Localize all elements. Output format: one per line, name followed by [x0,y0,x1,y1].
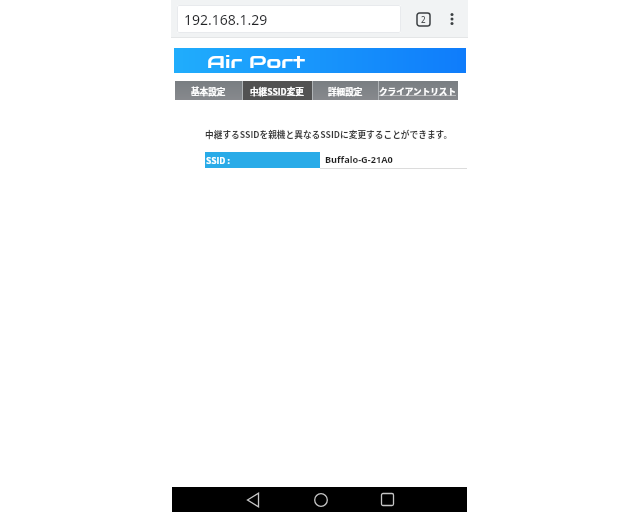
staticText: 192.168.1.29 [184,10,268,29]
staticText: 詳細設定 [328,85,363,97]
button[interactable]: Recent apps [375,487,400,512]
button[interactable]: Home [308,487,333,512]
button[interactable]: Tabs [411,7,435,31]
staticText: SSID : [206,154,231,166]
staticText: 中継するSSIDを親機と異なるSSIDに変更することができます。 [205,128,453,141]
button[interactable]: 基本設定 [175,81,242,100]
staticText: クライアントリスト [379,85,457,97]
button[interactable]: SSID : [205,152,320,168]
button[interactable]: 192.168.1.29 [177,5,401,33]
button[interactable]: 詳細設定 [312,81,378,100]
button[interactable]: Back [240,487,265,512]
staticText: 基本設定 [191,85,226,97]
button[interactable]: More options [440,7,464,31]
staticText: Air Port [207,51,306,73]
button[interactable]: 中継SSID変更 [242,81,312,100]
button[interactable]: クライアントリスト [378,81,458,100]
staticText: 中継SSID変更 [250,85,304,97]
staticText: Buffalo-G-21A0 [325,153,393,166]
staticText: 2 [421,14,426,25]
